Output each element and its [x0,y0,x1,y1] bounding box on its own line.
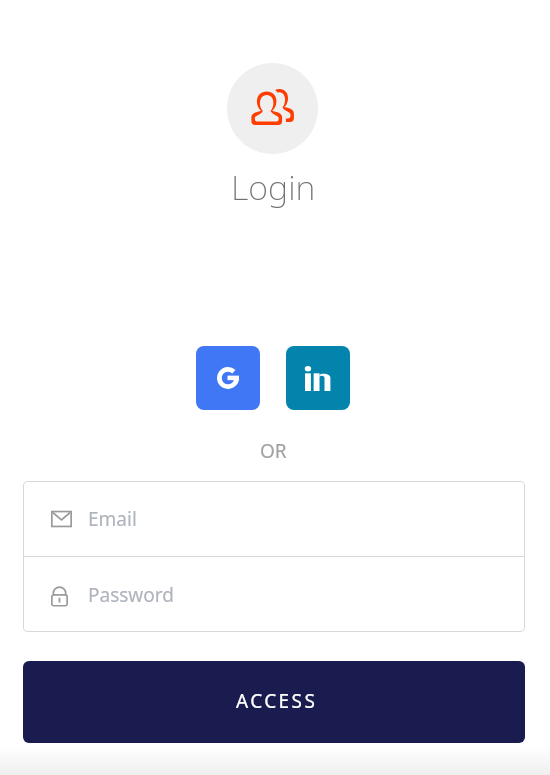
button[interactable]: ACCESS [23,661,525,743]
button[interactable]: Email [23,481,525,556]
button[interactable]: Sign in with Google [196,346,260,410]
staticText: Login [231,164,316,210]
staticText: Password [88,582,174,608]
staticText: OR [260,438,287,464]
staticText: ACCESS [236,688,318,714]
button[interactable]: Sign in with LinkedIn [286,346,350,410]
button[interactable]: Password [23,557,525,632]
staticText: Email [88,506,137,532]
